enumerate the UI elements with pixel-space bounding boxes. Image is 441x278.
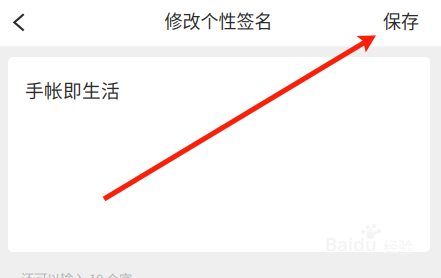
button[interactable]: 保存 — [365, 0, 441, 45]
staticText: Baidu — [325, 233, 376, 256]
staticText: 手帐即生活 — [25, 76, 120, 103]
staticText: 修改个性签名 — [164, 7, 272, 34]
staticText: 经验 — [383, 235, 413, 257]
button[interactable]: 手帐即生活 — [8, 57, 430, 252]
button[interactable]: Back — [0, 0, 44, 45]
staticText: 还可以输入 10 个字 — [21, 269, 132, 278]
staticText: 保存 — [383, 7, 419, 34]
